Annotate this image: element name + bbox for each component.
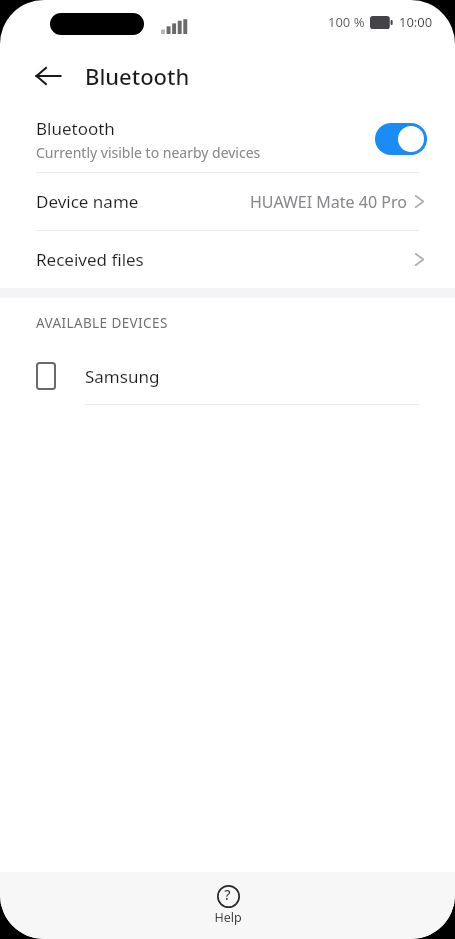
staticText: Currently visible to nearby devices <box>36 143 261 162</box>
staticText: 100 % <box>328 13 365 31</box>
staticText: Help <box>214 909 242 926</box>
button[interactable]: Samsung <box>0 348 455 404</box>
staticText: Samsung <box>85 365 160 388</box>
staticText: HUAWEI Mate 40 Pro <box>250 191 407 213</box>
staticText: Bluetooth <box>36 117 115 140</box>
button[interactable]: Received files <box>0 231 455 288</box>
staticText: Bluetooth <box>85 61 190 91</box>
button[interactable]: Back <box>26 54 70 98</box>
button[interactable]: Device name <box>0 173 455 230</box>
staticText: 10:00 <box>399 13 433 31</box>
staticText: ? <box>224 885 231 904</box>
staticText: Received files <box>36 248 144 271</box>
staticText: Device name <box>36 190 139 213</box>
button[interactable]: Bluetooth <box>0 106 455 172</box>
staticText: AVAILABLE DEVICES <box>36 314 168 332</box>
button[interactable]: Bluetooth toggle <box>375 123 427 155</box>
button[interactable]: Help <box>194 879 262 932</box>
